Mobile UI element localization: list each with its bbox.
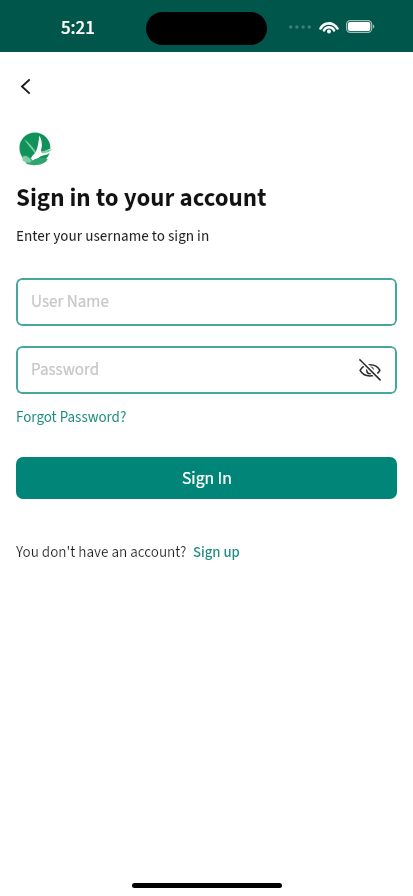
- staticText: Sign in to your account: [16, 180, 267, 216]
- staticText: Sign In: [182, 466, 232, 491]
- staticText: Enter your username to sign in: [16, 226, 210, 247]
- button[interactable]: Forgot Password?: [16, 407, 127, 428]
- staticText: Forgot Password?: [16, 407, 127, 428]
- staticText: You don't have an account?: [16, 542, 187, 563]
- button[interactable]: Sign up: [193, 542, 240, 563]
- staticText: Sign up: [193, 542, 240, 563]
- staticText: 5:21: [61, 15, 95, 42]
- button[interactable]: Show password: [355, 355, 385, 385]
- button[interactable]: Sign In: [16, 457, 397, 499]
- button[interactable]: User Name: [16, 278, 397, 326]
- button[interactable]: Password: [16, 346, 397, 394]
- button[interactable]: Back: [7, 68, 43, 104]
- staticText: Password: [31, 358, 100, 382]
- staticText: User Name: [31, 290, 109, 314]
